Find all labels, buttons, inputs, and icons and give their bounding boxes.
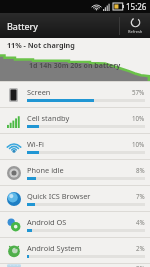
staticText: 10% [132,114,145,122]
staticText: 11% - Not charging [7,40,75,50]
button[interactable]: Screen [0,81,150,107]
staticText: 15:26 [126,1,147,12]
staticText: Screen [27,87,51,97]
button[interactable]: Cell standby [0,107,150,133]
button[interactable]: Wi-Fi [0,133,150,159]
staticText: Battery [7,20,38,32]
staticText: Wi-Fi [27,139,44,149]
button[interactable]: Quick ICS Browser [0,185,150,211]
staticText: Cell standby [27,113,70,123]
staticText: Phone idle [27,165,64,175]
button[interactable]: Android OS [0,211,150,237]
staticText: 57% [132,88,145,96]
staticText: Refresh [128,29,143,34]
staticText: Android OS [27,217,67,227]
staticText: Android System [27,243,82,253]
button[interactable]: Android System [0,237,150,263]
staticText: 10% [132,140,145,148]
staticText: 4% [136,218,145,226]
button[interactable]: Refresh [120,13,150,38]
staticText: 2% [136,244,145,252]
staticText: Quick ICS Browser [27,191,91,201]
staticText: 8% [136,166,145,174]
button[interactable]: Snowstorm application [0,263,150,267]
staticText: 7% [136,192,145,200]
staticText: 1d 14h 30m 20s on battery [29,61,121,71]
staticText: 2% [136,264,145,267]
button[interactable]: Phone idle [0,159,150,185]
